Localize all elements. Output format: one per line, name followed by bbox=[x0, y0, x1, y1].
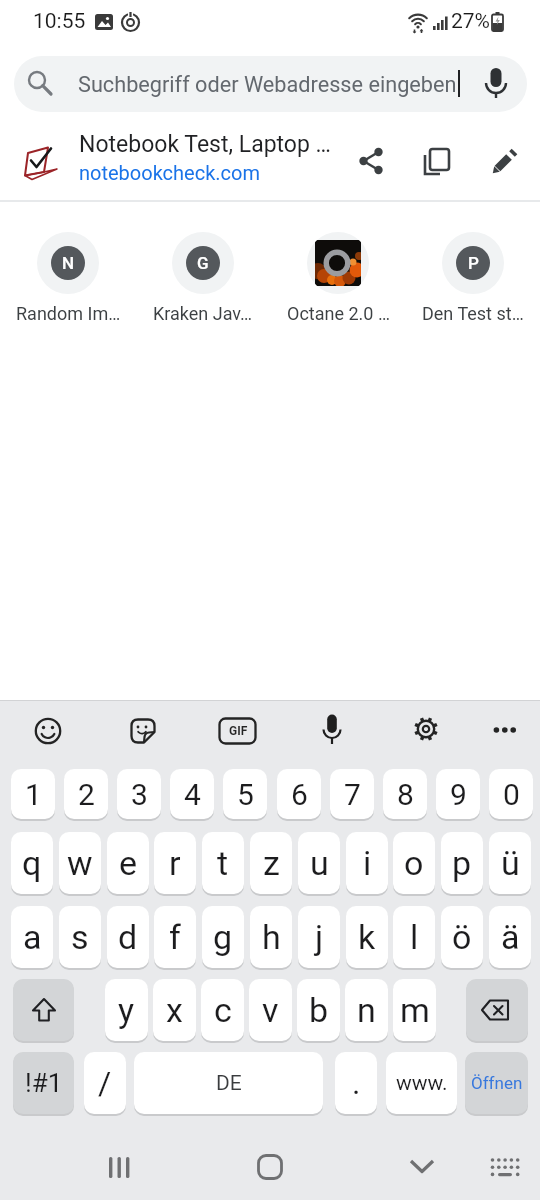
staticText: l bbox=[410, 917, 419, 957]
staticText: e bbox=[119, 843, 138, 883]
staticText: z bbox=[263, 843, 280, 883]
button[interactable]: c bbox=[201, 979, 244, 1041]
button[interactable]: o bbox=[393, 832, 435, 894]
button[interactable]: 5 bbox=[223, 769, 267, 819]
button[interactable]: d bbox=[107, 906, 149, 968]
staticText: 1 bbox=[25, 777, 42, 812]
button[interactable]: l bbox=[393, 906, 435, 968]
button[interactable]: z bbox=[250, 832, 292, 894]
button[interactable]: i bbox=[346, 832, 388, 894]
button[interactable]: x bbox=[153, 979, 196, 1041]
button[interactable]: 9 bbox=[436, 769, 480, 819]
button[interactable]: 3 bbox=[117, 769, 161, 819]
staticText: n bbox=[357, 990, 376, 1030]
staticText: www. bbox=[396, 1071, 448, 1096]
button[interactable]: g bbox=[202, 906, 244, 968]
button[interactable]: Öffnen bbox=[465, 1052, 528, 1114]
button[interactable] bbox=[252, 1150, 288, 1184]
button[interactable]: w bbox=[59, 832, 101, 894]
button[interactable]: ä bbox=[489, 906, 531, 968]
staticText: Kraken Jav… bbox=[153, 303, 253, 324]
button[interactable] bbox=[466, 979, 528, 1041]
button[interactable]: e bbox=[107, 832, 149, 894]
button[interactable]: 8 bbox=[383, 769, 427, 819]
staticText: 6 bbox=[291, 777, 308, 812]
button[interactable]: t bbox=[202, 832, 244, 894]
staticText: Den Test st… bbox=[422, 303, 524, 324]
button[interactable]: n bbox=[345, 979, 388, 1041]
staticText: N bbox=[62, 253, 75, 273]
staticText: s bbox=[71, 917, 89, 957]
staticText: ü bbox=[501, 843, 520, 883]
button[interactable]: DE bbox=[134, 1052, 323, 1114]
button[interactable] bbox=[492, 724, 518, 736]
button[interactable]: q bbox=[11, 832, 53, 894]
staticText: 3 bbox=[131, 777, 148, 812]
button[interactable]: 4 bbox=[170, 769, 214, 819]
staticText: 9 bbox=[450, 777, 467, 812]
button[interactable] bbox=[307, 232, 369, 294]
button[interactable]: . bbox=[335, 1052, 377, 1114]
button[interactable] bbox=[318, 713, 346, 749]
button[interactable]: 1 bbox=[11, 769, 55, 819]
button[interactable] bbox=[13, 979, 74, 1041]
staticText: x bbox=[166, 990, 183, 1030]
button[interactable] bbox=[34, 717, 62, 745]
button[interactable]: P bbox=[442, 232, 504, 294]
staticText: a bbox=[23, 917, 42, 957]
button[interactable] bbox=[102, 1150, 138, 1184]
button[interactable]: m bbox=[393, 979, 436, 1041]
button[interactable]: a bbox=[11, 906, 53, 968]
staticText: r bbox=[169, 843, 181, 883]
button[interactable] bbox=[129, 717, 157, 745]
button[interactable]: b bbox=[297, 979, 340, 1041]
button[interactable]: GIF bbox=[219, 717, 257, 745]
button[interactable]: 7 bbox=[330, 769, 374, 819]
button[interactable]: / bbox=[84, 1052, 126, 1114]
staticText: GIF bbox=[229, 724, 248, 738]
staticText: 7 bbox=[344, 777, 361, 812]
staticText: m bbox=[400, 990, 430, 1030]
button[interactable]: h bbox=[250, 906, 292, 968]
button[interactable]: p bbox=[441, 832, 483, 894]
staticText: Suchbegriff oder Webadresse eingeben bbox=[78, 72, 457, 97]
button[interactable] bbox=[489, 1152, 521, 1182]
button[interactable]: 2 bbox=[64, 769, 108, 819]
staticText: w bbox=[67, 843, 93, 883]
staticText: Notebook Test, Laptop … bbox=[79, 131, 331, 158]
button[interactable]: r bbox=[154, 832, 196, 894]
button[interactable] bbox=[482, 66, 510, 100]
button[interactable] bbox=[423, 147, 452, 176]
button[interactable]: j bbox=[298, 906, 340, 968]
staticText: 5 bbox=[237, 777, 254, 812]
staticText: b bbox=[309, 990, 329, 1030]
staticText: h bbox=[262, 917, 281, 957]
button[interactable] bbox=[404, 1150, 440, 1184]
staticText: k bbox=[358, 917, 376, 957]
button[interactable]: y bbox=[105, 979, 148, 1041]
button[interactable]: v bbox=[249, 979, 292, 1041]
button[interactable]: www. bbox=[386, 1052, 457, 1114]
button[interactable]: u bbox=[298, 832, 340, 894]
button[interactable]: N bbox=[37, 232, 99, 294]
button[interactable]: 0 bbox=[489, 769, 533, 819]
button[interactable] bbox=[412, 715, 440, 743]
staticText: . bbox=[352, 1064, 361, 1102]
button[interactable]: ö bbox=[441, 906, 483, 968]
staticText: 0 bbox=[503, 777, 520, 812]
button[interactable] bbox=[490, 146, 520, 176]
button[interactable] bbox=[14, 56, 527, 112]
staticText: Octane 2.0 … bbox=[287, 303, 390, 324]
button[interactable]: !#1 bbox=[13, 1052, 74, 1114]
staticText: d bbox=[118, 917, 138, 957]
staticText: u bbox=[310, 843, 329, 883]
staticText: Öffnen bbox=[471, 1073, 523, 1093]
button[interactable] bbox=[358, 147, 386, 175]
button[interactable]: G bbox=[172, 232, 234, 294]
staticText: q bbox=[22, 843, 42, 883]
button[interactable]: k bbox=[346, 906, 388, 968]
button[interactable]: 6 bbox=[277, 769, 321, 819]
button[interactable]: f bbox=[154, 906, 196, 968]
button[interactable]: ü bbox=[489, 832, 531, 894]
button[interactable]: s bbox=[59, 906, 101, 968]
